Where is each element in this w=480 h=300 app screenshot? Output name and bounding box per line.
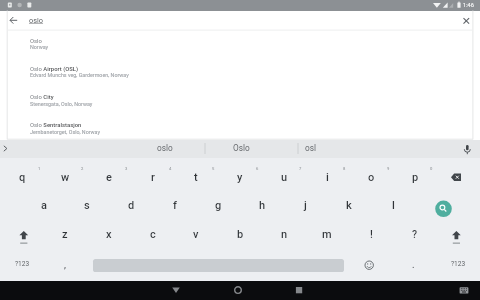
button[interactable] bbox=[196, 191, 240, 220]
button[interactable] bbox=[133, 140, 195, 158]
button[interactable] bbox=[349, 162, 393, 191]
button[interactable] bbox=[262, 162, 306, 191]
staticText: Oslo Airport (OSL) bbox=[30, 66, 79, 73]
button[interactable] bbox=[4, 11, 23, 30]
button[interactable] bbox=[175, 162, 219, 191]
staticText: 8 bbox=[343, 166, 346, 171]
button[interactable] bbox=[452, 281, 476, 300]
button[interactable] bbox=[457, 140, 478, 158]
staticText: 4 bbox=[169, 166, 172, 171]
staticText: d bbox=[128, 199, 135, 212]
staticText: Oslo Sentralstasjon bbox=[30, 122, 82, 129]
button[interactable] bbox=[240, 191, 284, 220]
staticText: Jernbanetorget, Oslo, Norway bbox=[30, 129, 100, 135]
staticText: s bbox=[84, 199, 90, 212]
button[interactable] bbox=[153, 191, 197, 220]
staticText: w bbox=[61, 171, 70, 184]
button[interactable] bbox=[436, 220, 480, 249]
staticText: u bbox=[281, 171, 288, 184]
button[interactable] bbox=[436, 162, 480, 191]
button[interactable] bbox=[44, 249, 88, 278]
staticText: v bbox=[193, 228, 199, 241]
staticText: ?123 bbox=[451, 260, 466, 268]
button[interactable] bbox=[349, 249, 393, 278]
button[interactable] bbox=[393, 220, 437, 249]
button[interactable] bbox=[175, 220, 219, 249]
staticText: i bbox=[326, 171, 329, 184]
staticText: z bbox=[62, 228, 68, 241]
staticText: 1 bbox=[38, 166, 41, 171]
button[interactable] bbox=[224, 281, 252, 300]
staticText: o bbox=[368, 171, 375, 184]
button[interactable] bbox=[306, 162, 350, 191]
staticText: , bbox=[64, 260, 66, 271]
button[interactable] bbox=[109, 191, 153, 220]
staticText: 3 bbox=[125, 166, 128, 171]
staticText: Oslo bbox=[30, 38, 42, 45]
button[interactable] bbox=[436, 191, 480, 220]
button[interactable] bbox=[262, 220, 306, 249]
staticText: e bbox=[106, 171, 112, 184]
button[interactable] bbox=[131, 220, 175, 249]
staticText: k bbox=[346, 199, 352, 212]
staticText: Stenersgata, Oslo, Norway bbox=[30, 101, 93, 107]
staticText: r bbox=[151, 171, 155, 184]
button[interactable] bbox=[306, 220, 350, 249]
button[interactable] bbox=[0, 249, 44, 278]
staticText: f bbox=[173, 199, 177, 212]
button[interactable] bbox=[87, 220, 131, 249]
button[interactable] bbox=[22, 191, 66, 220]
staticText: . bbox=[412, 260, 415, 271]
button[interactable] bbox=[393, 249, 437, 278]
staticText: osl bbox=[305, 143, 317, 153]
staticText: y bbox=[237, 171, 243, 184]
button[interactable] bbox=[456, 11, 476, 30]
staticText: 6 bbox=[256, 166, 259, 171]
staticText: l bbox=[392, 199, 395, 212]
button[interactable] bbox=[284, 191, 328, 220]
button[interactable] bbox=[218, 162, 262, 191]
button[interactable] bbox=[327, 191, 371, 220]
staticText: ? bbox=[412, 228, 418, 240]
button[interactable] bbox=[210, 140, 272, 158]
staticText: q bbox=[19, 171, 26, 184]
staticText: 2 bbox=[81, 166, 84, 171]
button[interactable] bbox=[8, 31, 473, 59]
button[interactable] bbox=[349, 220, 393, 249]
button[interactable] bbox=[8, 87, 473, 115]
staticText: h bbox=[259, 199, 266, 212]
staticText: x bbox=[106, 228, 112, 241]
button[interactable] bbox=[218, 220, 262, 249]
button[interactable] bbox=[8, 115, 473, 143]
staticText: a bbox=[41, 199, 47, 212]
button[interactable] bbox=[8, 59, 473, 87]
button[interactable] bbox=[44, 162, 88, 191]
button[interactable] bbox=[393, 162, 437, 191]
staticText: b bbox=[237, 228, 244, 241]
button[interactable] bbox=[436, 249, 480, 278]
staticText: 1:46 bbox=[463, 2, 474, 9]
button[interactable] bbox=[87, 162, 131, 191]
button[interactable] bbox=[371, 191, 415, 220]
staticText: Oslo bbox=[233, 143, 250, 153]
staticText: Norway bbox=[30, 44, 49, 50]
staticText: g bbox=[215, 199, 222, 212]
button[interactable] bbox=[280, 140, 341, 158]
button[interactable] bbox=[0, 220, 44, 249]
staticText: t bbox=[194, 171, 198, 184]
button[interactable] bbox=[65, 191, 109, 220]
button[interactable] bbox=[131, 162, 175, 191]
button[interactable] bbox=[285, 281, 313, 300]
staticText: 7 bbox=[299, 166, 302, 171]
staticText: 0 bbox=[430, 166, 433, 171]
button[interactable] bbox=[44, 220, 88, 249]
staticText: m bbox=[322, 228, 332, 241]
staticText: oslo bbox=[157, 143, 173, 153]
button[interactable] bbox=[0, 140, 14, 158]
staticText: Edvard Munchs veg, Gardermoen, Norway bbox=[30, 72, 129, 78]
button[interactable] bbox=[162, 281, 190, 300]
staticText: 5 bbox=[212, 166, 215, 171]
button[interactable] bbox=[0, 162, 44, 191]
staticText: c bbox=[150, 228, 156, 241]
